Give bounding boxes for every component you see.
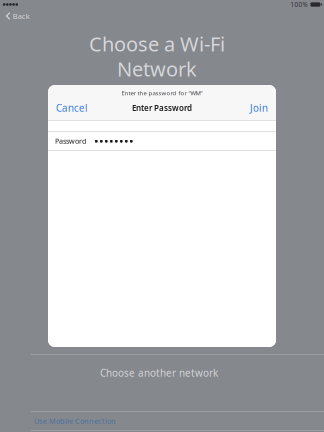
staticText: Enter Password — [132, 102, 192, 113]
staticText: Choose another network — [100, 366, 218, 380]
button[interactable]: Use Mobile Connection — [0, 412, 324, 430]
staticText: Join — [250, 101, 268, 115]
staticText: Use Mobile Connection — [34, 416, 116, 426]
staticText: Back — [13, 11, 30, 21]
staticText: Choose a Wi-Fi — [89, 30, 225, 57]
button[interactable]: Cancel — [48, 102, 96, 114]
staticText: Password — [55, 136, 86, 146]
staticText: Cancel — [56, 101, 88, 115]
button[interactable]: Join — [242, 102, 276, 114]
staticText: •••••••• — [94, 133, 134, 149]
button[interactable]: Choose another network — [0, 355, 324, 391]
staticText: 100% — [290, 0, 307, 9]
button[interactable]: Back — [0, 9, 324, 23]
staticText: Network — [117, 55, 197, 82]
staticText: Enter the password for “WM” — [121, 89, 202, 97]
